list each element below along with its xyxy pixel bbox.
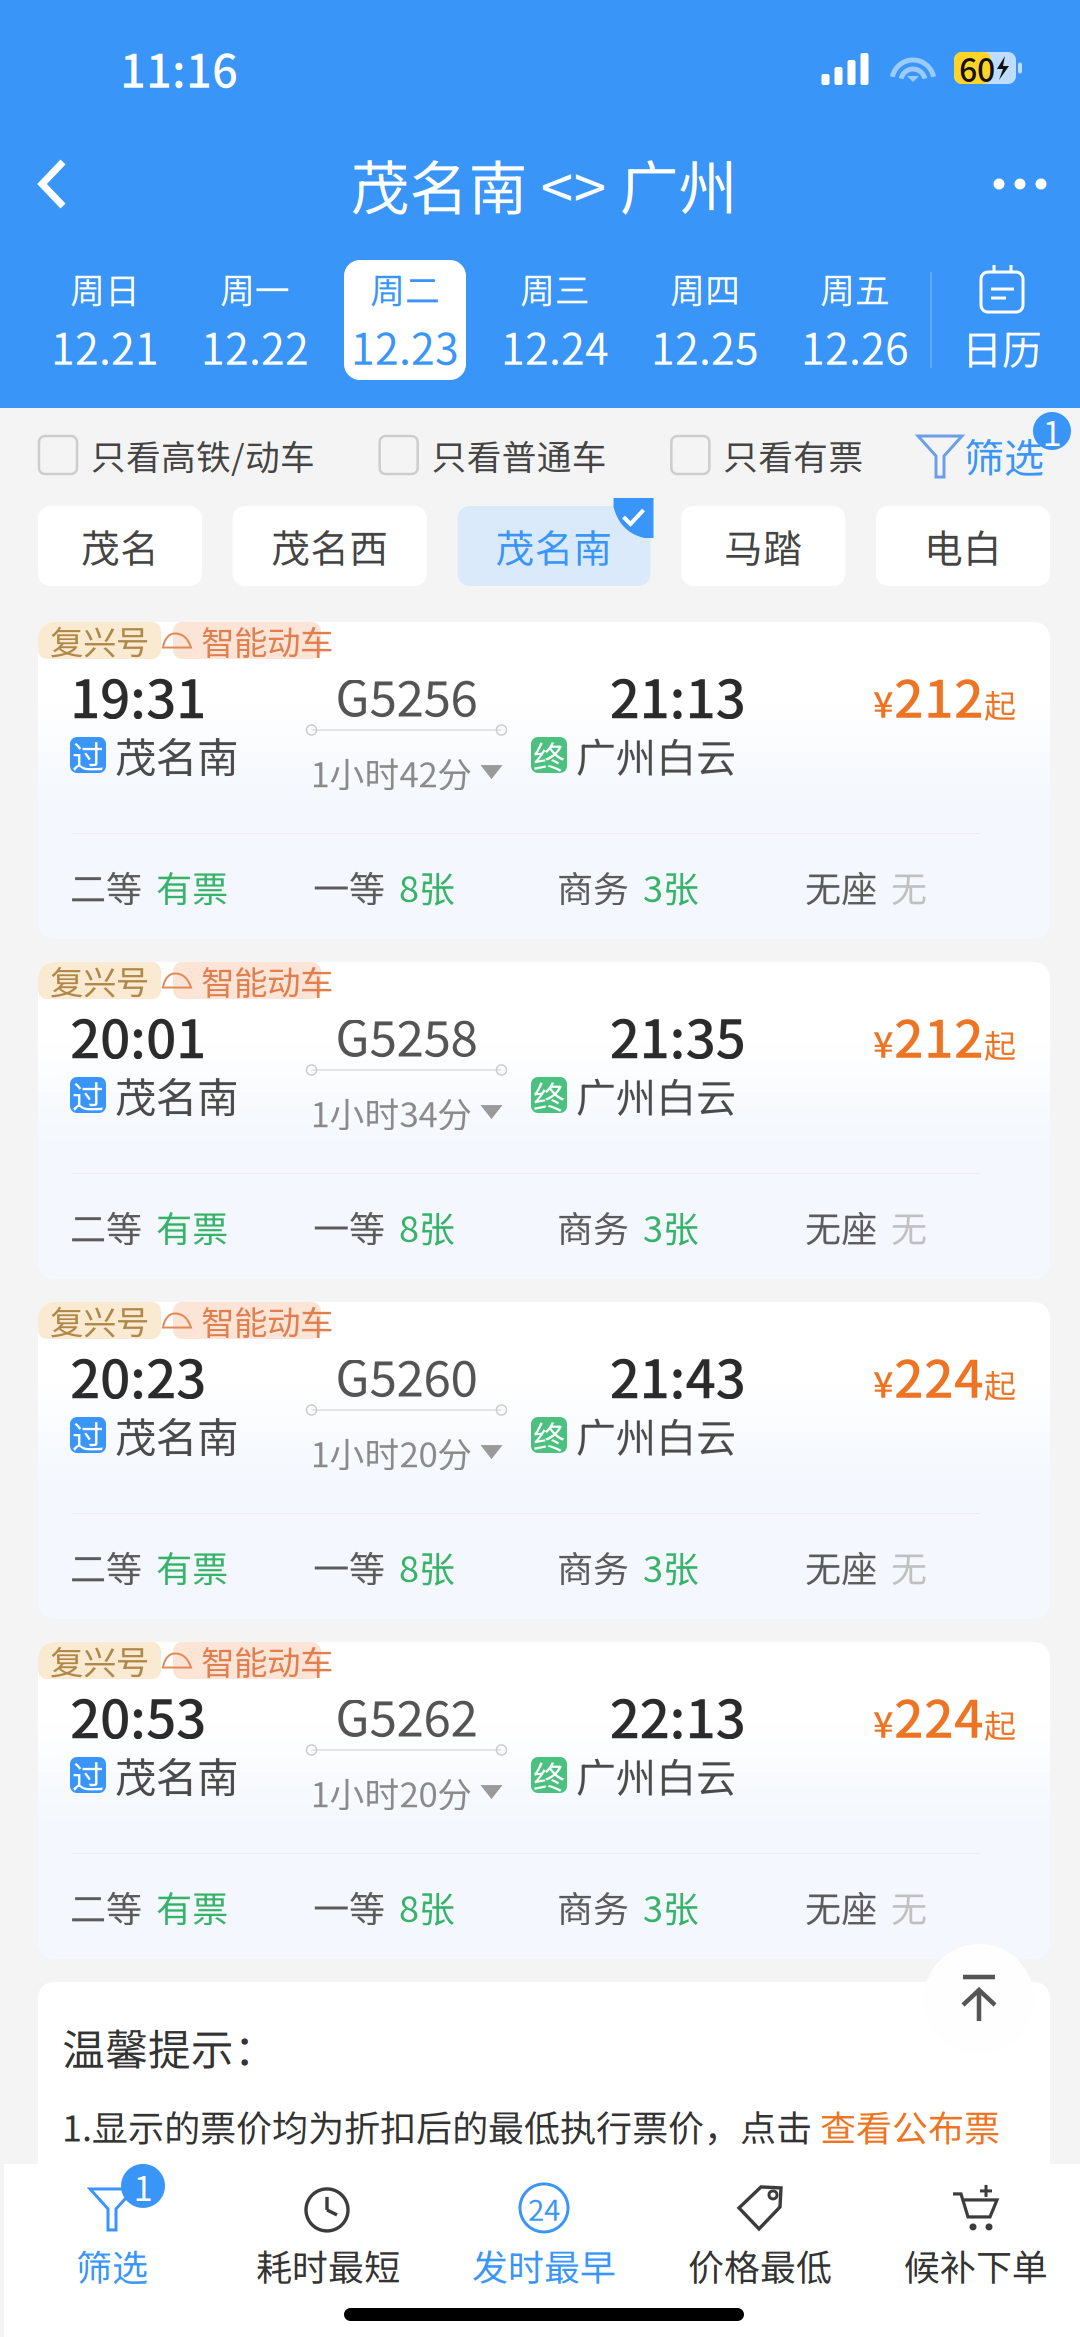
button[interactable]: 只看普通车: [380, 430, 607, 480]
staticText: 212: [894, 997, 984, 1073]
staticText: G5262: [335, 1679, 477, 1751]
staticText: 终: [533, 1412, 565, 1458]
staticText: 8张: [399, 1540, 455, 1592]
staticText: 过: [72, 1072, 104, 1118]
staticText: 有票: [156, 1540, 228, 1592]
staticText: 茂名南: [115, 1065, 238, 1125]
staticText: 复兴号: [50, 1296, 149, 1345]
staticText: 周五: [820, 263, 890, 313]
staticText: 212: [894, 657, 984, 733]
staticText: 224: [894, 1677, 984, 1753]
button[interactable]: 复兴号: [38, 1302, 1050, 1619]
button[interactable]: 价格最低: [652, 2183, 868, 2291]
button[interactable]: 电白: [876, 506, 1050, 586]
staticText: 一等: [313, 860, 385, 912]
staticText: 只看高铁/动车: [91, 430, 315, 480]
button[interactable]: 只看有票: [671, 430, 863, 480]
staticText: 终: [533, 1752, 565, 1798]
staticText: 一等: [313, 1540, 385, 1592]
staticText: 二等: [70, 1880, 142, 1932]
staticText: 3张: [643, 1540, 699, 1592]
button[interactable]: 茂名西: [233, 506, 427, 586]
staticText: 商务: [557, 1880, 629, 1932]
staticText: 茂名南: [115, 1745, 238, 1805]
staticText: 起: [984, 1021, 1016, 1067]
staticText: 候补下单: [904, 2239, 1048, 2291]
button[interactable]: 周五: [780, 258, 930, 382]
staticText: 复兴号: [50, 956, 149, 1005]
staticText: ¥: [873, 1356, 894, 1408]
button[interactable]: 耗时最短: [220, 2183, 436, 2291]
staticText: 无座: [805, 1540, 877, 1592]
button[interactable]: 复兴号: [38, 1642, 1050, 1959]
button[interactable]: Scroll to top: [924, 1944, 1034, 2054]
staticText: 无: [891, 1880, 927, 1932]
button[interactable]: More: [952, 124, 1080, 244]
staticText: 3张: [643, 1200, 699, 1252]
staticText: 智能动车: [201, 616, 333, 665]
staticText: 茂名南: [115, 1405, 238, 1465]
staticText: 12.24: [501, 315, 609, 377]
staticText: 1.显示的票价均为折扣后的最低执行票价，点击: [62, 2100, 820, 2152]
button[interactable]: 周二: [330, 258, 480, 382]
staticText: 无: [891, 1540, 927, 1592]
staticText: 1小时20分: [310, 1767, 472, 1817]
staticText: 20:23: [70, 1336, 206, 1414]
button[interactable]: 周日: [30, 258, 180, 382]
staticText: 过: [72, 1412, 104, 1458]
staticText: 商务: [557, 1200, 629, 1252]
staticText: 19:31: [70, 656, 206, 734]
staticText: 智能动车: [201, 1636, 333, 1685]
staticText: 复兴号: [50, 616, 149, 665]
staticText: 广州白云: [576, 1406, 736, 1464]
staticText: 周三: [520, 263, 590, 313]
staticText: 无座: [805, 1880, 877, 1932]
staticText: 12.23: [351, 315, 459, 377]
staticText: 12.26: [801, 315, 909, 377]
staticText: 日历: [962, 318, 1042, 376]
staticText: 周四: [670, 263, 740, 313]
staticText: 商务: [557, 860, 629, 912]
staticText: 过: [72, 732, 104, 778]
button[interactable]: 马踏: [681, 506, 845, 586]
staticText: 无座: [805, 1200, 877, 1252]
button[interactable]: 候补下单: [868, 2183, 1080, 2291]
staticText: 电白: [924, 518, 1002, 574]
button[interactable]: 复兴号: [38, 622, 1050, 939]
button[interactable]: 周一: [180, 258, 330, 382]
staticText: 茂名南: [115, 725, 238, 785]
staticText: 二等: [70, 860, 142, 912]
button[interactable]: 24: [436, 2183, 652, 2291]
staticText: 发时最早: [472, 2239, 616, 2291]
button[interactable]: 日历: [932, 260, 1072, 380]
staticText: 3张: [643, 1880, 699, 1932]
staticText: 二等: [70, 1200, 142, 1252]
staticText: 广州白云: [576, 1066, 736, 1124]
button[interactable]: 茂名: [38, 506, 202, 586]
staticText: 21:35: [609, 996, 745, 1074]
staticText: 1: [1042, 406, 1061, 456]
staticText: G5256: [335, 659, 477, 731]
staticText: 复兴号: [50, 1636, 149, 1685]
staticText: 商务: [557, 1540, 629, 1592]
staticText: 21:43: [609, 1336, 745, 1414]
staticText: ¥: [873, 1016, 894, 1068]
button[interactable]: 1: [4, 2183, 220, 2291]
staticText: 1小时34分: [310, 1087, 472, 1137]
staticText: 广州白云: [576, 726, 736, 784]
button[interactable]: 只看高铁/动车: [39, 430, 315, 480]
staticText: 无座: [805, 860, 877, 912]
staticText: 起: [984, 1701, 1016, 1747]
staticText: 有票: [156, 1880, 228, 1932]
staticText: 22:13: [609, 1676, 745, 1754]
button[interactable]: 周四: [630, 258, 780, 382]
staticText: 温馨提示：: [62, 2016, 277, 2078]
staticText: 无: [891, 860, 927, 912]
button[interactable]: 茂名南: [457, 506, 650, 586]
button[interactable]: 复兴号: [38, 962, 1050, 1279]
button[interactable]: Back: [0, 124, 136, 244]
staticText: 周二: [370, 263, 440, 313]
button[interactable]: 筛选: [928, 426, 1044, 484]
button[interactable]: 周三: [480, 258, 630, 382]
staticText: 查看公布票: [820, 2100, 1000, 2152]
